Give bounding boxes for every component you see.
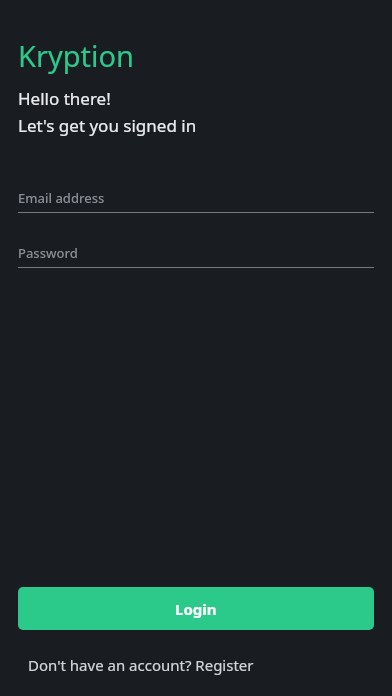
staticText: Don't have an account? Register bbox=[28, 655, 254, 675]
button[interactable]: Login bbox=[18, 587, 374, 630]
staticText: Kryption bbox=[18, 36, 134, 75]
button[interactable]: Password bbox=[18, 239, 374, 268]
staticText: Password bbox=[18, 244, 78, 262]
button[interactable]: Don't have an account? Register bbox=[18, 650, 374, 680]
staticText: Email address bbox=[18, 189, 105, 207]
staticText: Let's get you signed in bbox=[18, 114, 197, 137]
staticText: Login bbox=[175, 599, 217, 619]
staticText: Hello there! bbox=[18, 87, 111, 110]
button[interactable]: Email address bbox=[18, 184, 374, 213]
